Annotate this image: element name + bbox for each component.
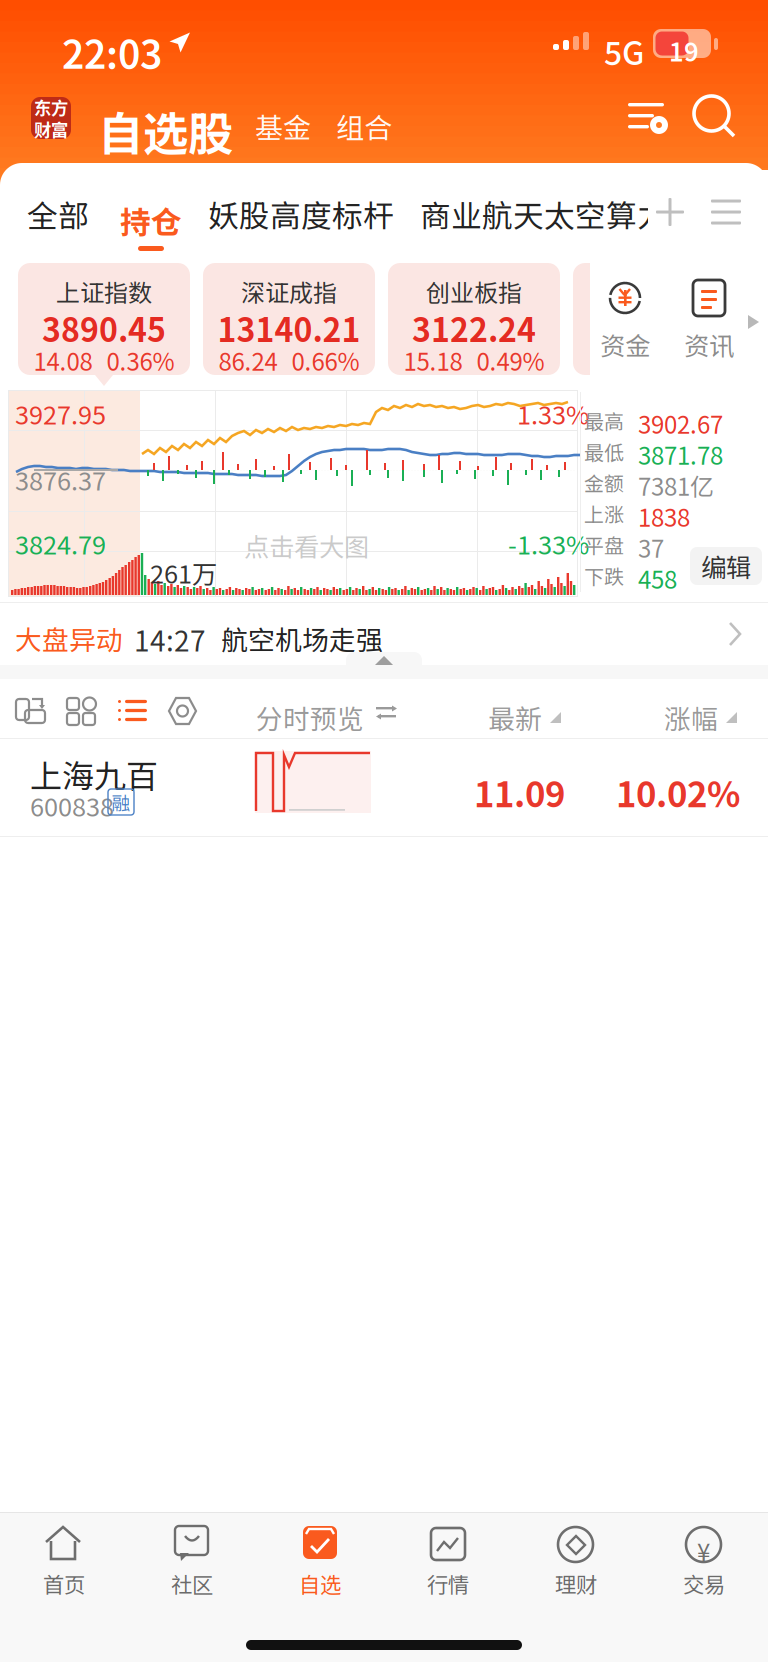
button[interactable]: 最新 [488,690,578,734]
staticText: 妖股高度标杆 [208,192,394,236]
staticText: 5G [604,28,644,74]
staticText: 航空机场走强 [221,619,383,658]
staticText: 3927.95 [15,395,106,432]
staticText: 创业板指 [426,274,522,309]
staticText: 15.18 [403,343,462,378]
staticText: 86.24 [218,343,277,378]
staticText: 261万 [150,554,217,591]
button[interactable]: 创业板指 [388,263,560,381]
button[interactable]: 基金 [245,100,321,152]
staticText: ¥ [697,1534,710,1569]
staticText: 交易 [683,1568,725,1599]
staticText: 11.09 [474,767,565,817]
button[interactable]: 上证指数 [18,263,190,381]
staticText: 3122.24 [412,305,536,351]
button[interactable]: 首页 [0,1514,128,1606]
staticText: 融 [111,788,130,815]
button[interactable]: ¥ [640,1514,768,1606]
staticText: 平盘 [584,530,624,559]
button[interactable]: 行情 [384,1514,512,1606]
staticText: 3871.78 [638,437,723,472]
staticText: 3876.37 [15,461,106,498]
staticText: 3890.45 [42,305,166,351]
button[interactable]: 深证成指 [203,263,375,381]
staticText: 金额 [584,468,624,497]
staticText: 13140.21 [217,305,360,351]
staticText: 下跌 [584,561,624,590]
staticText: 7381亿 [638,468,714,503]
staticText: 商业航天太空算力 [420,192,668,236]
staticText: 600838 [30,787,114,824]
staticText: 点击看大图 [244,527,369,564]
button[interactable]: 持仓 [112,176,188,258]
staticText: 深证成指 [241,274,337,309]
staticText: 编辑 [701,548,751,584]
staticText: 458 [638,561,677,596]
button[interactable]: Add watchlist [648,182,692,242]
staticText: 14.08 [33,343,92,378]
button[interactable]: 理财 [512,1514,640,1606]
button[interactable]: Display settings [167,696,198,726]
staticText: 组合 [336,106,392,146]
button[interactable]: Search [693,92,743,142]
staticText: 资金 [600,326,650,363]
button[interactable]: 涨幅 [664,690,754,734]
staticText: 3824.79 [15,525,106,562]
staticText: 财富 [34,116,68,142]
staticText: 最高 [584,406,624,435]
staticText: 最低 [584,437,624,466]
staticText: 首页 [43,1568,85,1599]
staticText: 东方 [34,94,68,119]
staticText: 自选 [299,1568,341,1599]
staticText: 上涨 [584,499,624,528]
button[interactable]: Grid layout [66,695,98,727]
staticText: 分时预览 [256,698,364,737]
staticText: 行情 [427,1568,469,1599]
button[interactable]: Sort and settings [624,92,674,142]
staticText: 19 [669,32,699,69]
button[interactable]: 编辑 [690,547,762,585]
staticText: 14:27 [134,619,206,659]
staticText: 0.49% [476,343,544,378]
staticText: 上海九百 [30,751,158,797]
staticText: 3902.67 [638,406,723,441]
button[interactable]: 全部 [20,182,96,246]
button[interactable]: 上海九百 [0,739,768,837]
button[interactable]: 商业航天太空算力 [420,182,654,246]
staticText: 37 [638,530,664,565]
staticText: 持仓 [120,198,182,242]
staticText: 0.66% [291,343,359,378]
staticText: 1.33% [517,395,589,432]
staticText: 自选股 [98,98,233,164]
staticText: 1838 [638,499,690,534]
button[interactable]: Manage watchlists [704,182,748,242]
staticText: 22:03 [62,24,162,80]
staticText: 社区 [171,1568,213,1599]
staticText: 基金 [255,106,311,146]
button[interactable]: 大盘异动 [0,603,768,665]
button[interactable]: 资金 [582,260,668,372]
staticText: -1.33% [508,525,589,562]
staticText: 全部 [27,192,89,236]
button[interactable]: 妖股高度标杆 [206,182,396,246]
button[interactable]: 自选 [256,1514,384,1606]
staticText: 10.02% [616,767,740,817]
staticText: 大盘异动 [15,619,123,658]
staticText: 理财 [555,1568,597,1599]
staticText: 涨幅 [664,698,718,737]
button[interactable]: 分时预览 [256,690,406,734]
button[interactable]: 社区 [128,1514,256,1606]
button[interactable]: 资讯 [666,260,752,372]
staticText: 0.36% [106,343,174,378]
button[interactable]: Card layout [15,694,49,728]
button[interactable]: 组合 [326,100,402,152]
staticText: 最新 [488,698,542,737]
staticText: 资讯 [684,326,734,363]
button[interactable]: List layout [118,696,148,726]
staticText: 上证指数 [56,274,152,309]
